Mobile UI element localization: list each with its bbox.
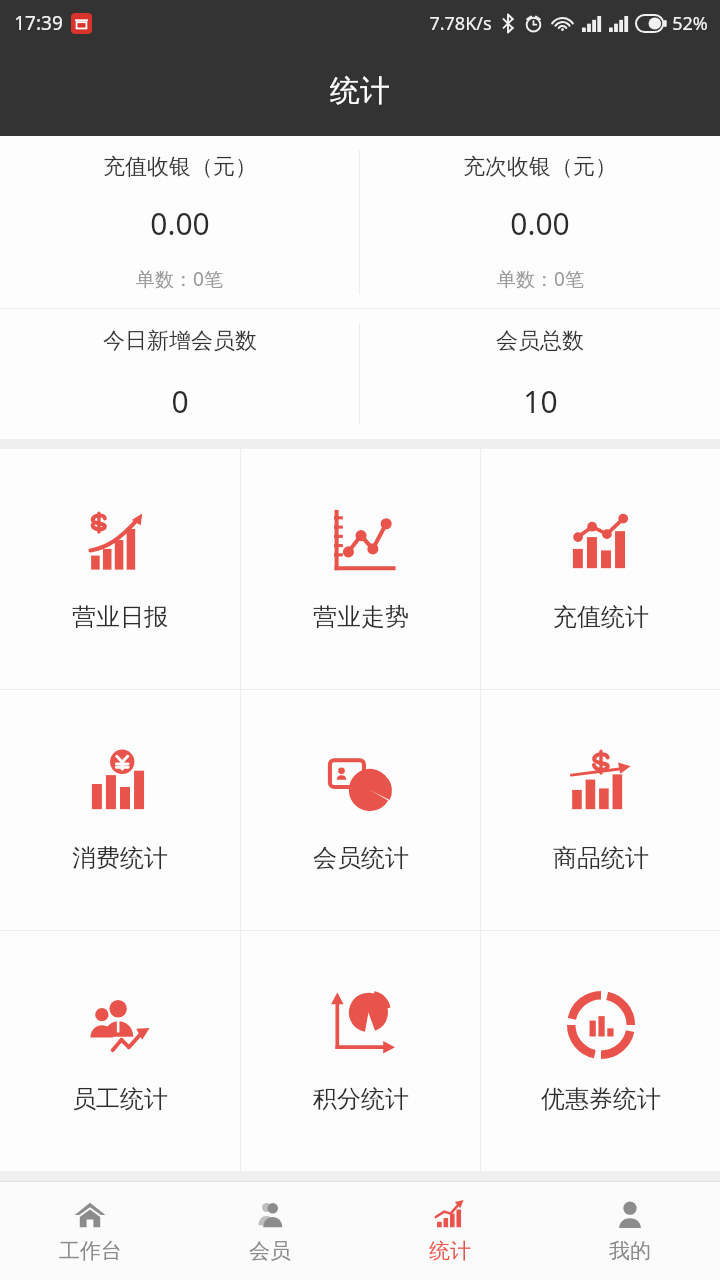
staticText: 消费统计 [72,843,168,873]
button[interactable]: 会员 [180,1182,360,1280]
button[interactable]: 充次收银（元） [360,136,720,308]
button[interactable]: 今日新增会员数 [0,309,359,439]
button[interactable]: 商品统计 [481,690,720,930]
staticText: 统计 [429,1238,471,1264]
button[interactable]: 营业日报 [0,449,240,689]
staticText: 优惠券统计 [541,1084,661,1114]
staticText: 会员总数 [496,327,584,355]
staticText: 充值统计 [553,602,649,632]
staticText: 单数：0笔 [497,266,584,292]
staticText: 0 [171,381,189,422]
button[interactable]: 营业走势 [241,449,480,689]
staticText: 会员统计 [313,843,409,873]
staticText: 52% [672,11,708,36]
staticText: 我的 [609,1238,651,1264]
staticText: 0.00 [510,203,570,244]
button[interactable]: 工作台 [0,1182,180,1280]
staticText: 0.00 [150,203,210,244]
staticText: 10 [523,381,558,422]
staticText: 积分统计 [313,1084,409,1114]
staticText: 员工统计 [72,1084,168,1114]
staticText: 单数：0笔 [136,266,223,292]
staticText: 商品统计 [553,843,649,873]
button[interactable]: 我的 [540,1182,720,1280]
button[interactable]: 积分统计 [241,931,480,1171]
button[interactable]: 充值统计 [481,449,720,689]
staticText: 统计 [330,72,390,110]
button[interactable]: 会员统计 [241,690,480,930]
staticText: 充值收银（元） [103,153,257,181]
staticText: 今日新增会员数 [103,327,257,355]
staticText: 充次收银（元） [463,153,617,181]
button[interactable]: 优惠券统计 [481,931,720,1171]
button[interactable]: 充值收银（元） [0,136,359,308]
staticText: 会员 [249,1238,291,1264]
button[interactable]: 统计 [360,1182,540,1280]
button[interactable]: 员工统计 [0,931,240,1171]
staticText: 7.78K/s [429,11,492,36]
button[interactable]: 会员总数 [360,309,720,439]
staticText: 17:39 [14,10,63,36]
button[interactable]: 消费统计 [0,690,240,930]
staticText: 营业日报 [72,602,168,632]
staticText: 工作台 [59,1238,122,1264]
staticText: 营业走势 [313,602,409,632]
